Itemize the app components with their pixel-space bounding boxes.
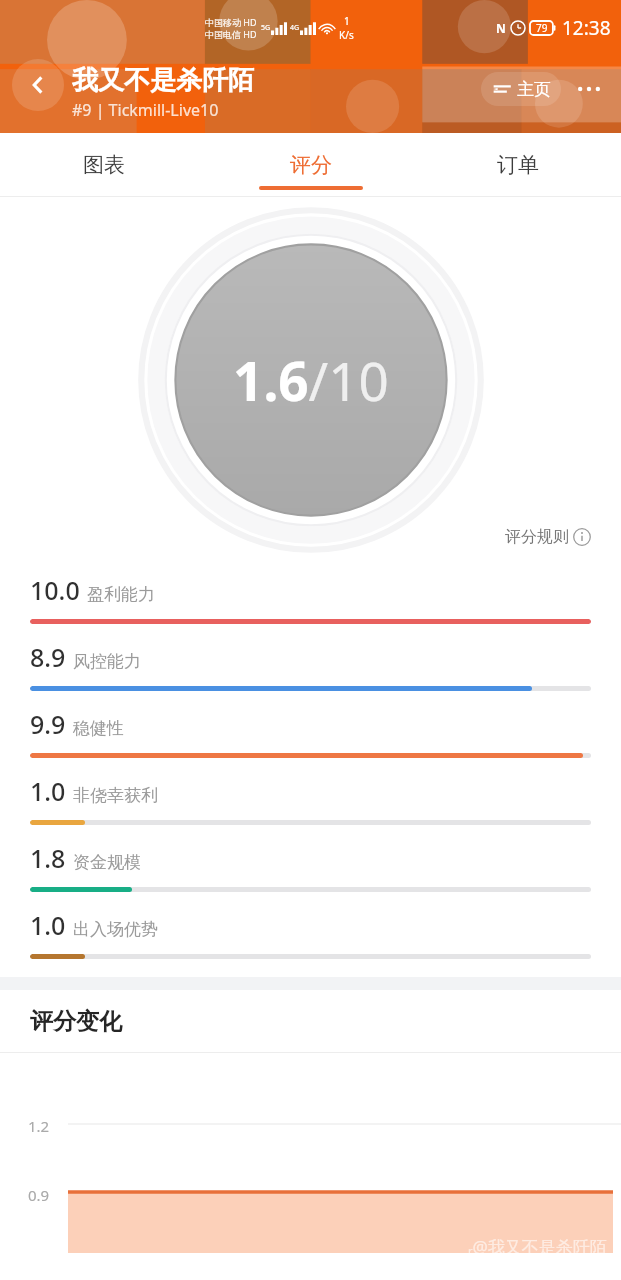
staticText: 资金规模 bbox=[73, 852, 141, 873]
staticText: #9 | Tickmill-Live10 bbox=[72, 99, 219, 121]
staticText: 9.9 bbox=[30, 707, 66, 741]
staticText: K/s bbox=[339, 28, 354, 42]
staticText: 出入场优势 bbox=[73, 919, 158, 940]
button[interactable]: Back bbox=[12, 59, 64, 111]
button[interactable]: More options bbox=[567, 67, 611, 111]
button[interactable]: 主页 bbox=[491, 78, 551, 100]
staticText: N bbox=[496, 20, 506, 36]
button[interactable]: 评分 bbox=[207, 133, 414, 196]
button[interactable]: 订单 bbox=[414, 133, 621, 196]
staticText: 稳健性 bbox=[73, 718, 124, 739]
staticText: 我又不是杀阡陌 bbox=[72, 64, 254, 97]
staticText: 主页 bbox=[517, 79, 551, 100]
staticText: 1.0 bbox=[30, 774, 66, 808]
staticText: 订单 bbox=[497, 152, 539, 178]
staticText: 10.0 bbox=[30, 573, 80, 607]
button[interactable]: 图表 bbox=[0, 133, 207, 196]
staticText: 1 bbox=[344, 14, 350, 28]
staticText: 12:38 bbox=[562, 15, 611, 41]
staticText: 评分 bbox=[290, 152, 332, 178]
staticText: 0.9 bbox=[28, 1185, 50, 1205]
staticText: 图表 bbox=[83, 152, 125, 178]
staticText: 8.9 bbox=[30, 640, 66, 674]
staticText: 1.0 bbox=[30, 908, 66, 942]
staticText: 风控能力 bbox=[73, 651, 141, 672]
staticText: 中国移动 HD bbox=[205, 16, 257, 28]
staticText: 盈利能力 bbox=[87, 584, 155, 605]
staticText: 评分规则 bbox=[505, 527, 569, 547]
staticText: 5G bbox=[261, 23, 271, 33]
button[interactable]: 评分规则 bbox=[505, 527, 591, 547]
staticText: 79 bbox=[536, 21, 548, 35]
staticText: 中国电信 HD bbox=[205, 28, 257, 40]
staticText: 1.8 bbox=[30, 841, 66, 875]
staticText: 1.6/10 bbox=[233, 344, 389, 416]
staticText: ᵣ@我又不是杀阡陌 bbox=[468, 1235, 607, 1258]
staticText: 1.2 bbox=[28, 1116, 50, 1136]
staticText: 非侥幸获利 bbox=[73, 785, 158, 806]
staticText: 4G bbox=[290, 23, 300, 33]
staticText: 评分变化 bbox=[30, 1007, 122, 1036]
